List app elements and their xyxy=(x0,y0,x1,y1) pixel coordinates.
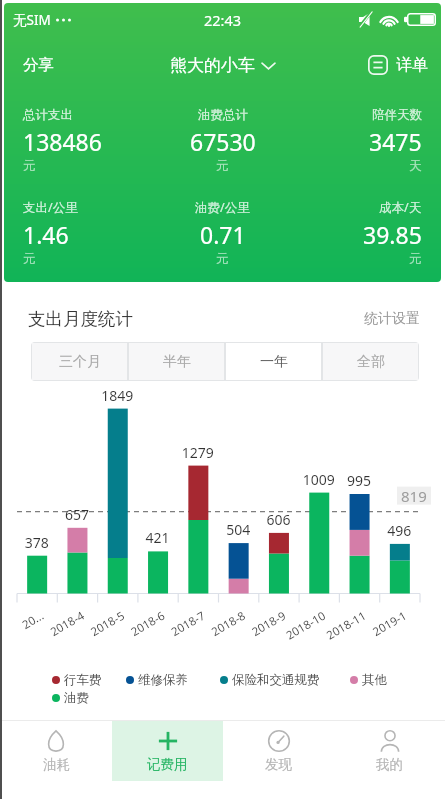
staticText: 元 xyxy=(23,158,36,174)
button[interactable]: 一年 xyxy=(226,343,321,380)
staticText: 行车费 xyxy=(64,672,102,688)
staticText: 油费总计 xyxy=(198,107,248,123)
staticText: 陪伴天数 xyxy=(372,107,422,123)
staticText: 熊大的小车 xyxy=(170,55,255,76)
staticText: 支出月度统计 xyxy=(28,308,133,330)
staticText: 成本/天 xyxy=(379,199,422,216)
staticText: 3475 xyxy=(369,126,422,157)
staticText: 无SIM xyxy=(13,11,51,29)
button[interactable]: 详单 xyxy=(358,49,441,81)
staticText: 1.46 xyxy=(23,219,69,250)
staticText: 维修保养 xyxy=(138,672,188,688)
staticText: 发现 xyxy=(265,756,292,773)
staticText: 其他 xyxy=(362,672,387,688)
staticText: 保险和交通规费 xyxy=(232,672,320,688)
staticText: 元 xyxy=(23,251,36,267)
button[interactable]: 统计设置 xyxy=(364,310,420,328)
button[interactable]: 油耗 xyxy=(0,721,112,781)
staticText: 支出/公里 xyxy=(23,199,78,216)
staticText: 全部 xyxy=(357,353,385,371)
button[interactable]: 分享 xyxy=(4,45,73,85)
staticText: 元 xyxy=(409,251,422,267)
button[interactable]: 熊大的小车 xyxy=(164,49,281,82)
staticText: 详单 xyxy=(396,55,428,75)
staticText: 67530 xyxy=(190,126,256,157)
staticText: 三个月 xyxy=(59,353,101,371)
staticText: 0.71 xyxy=(200,219,246,250)
staticText: 油费 xyxy=(64,690,89,706)
button[interactable]: 记费用 xyxy=(112,721,223,781)
staticText: 22:43 xyxy=(204,10,242,30)
button[interactable]: 三个月 xyxy=(32,343,127,380)
staticText: 油费/公里 xyxy=(195,199,250,216)
staticText: 我的 xyxy=(376,756,403,773)
staticText: 记费用 xyxy=(147,756,188,773)
staticText: 天 xyxy=(409,158,422,174)
staticText: 元 xyxy=(216,158,229,174)
staticText: 油耗 xyxy=(43,756,70,773)
staticText: 元 xyxy=(216,251,229,267)
button[interactable]: 我的 xyxy=(334,721,445,781)
button[interactable]: 半年 xyxy=(129,343,224,380)
button[interactable]: 全部 xyxy=(323,343,418,380)
staticText: 138486 xyxy=(23,126,102,157)
button[interactable]: 发现 xyxy=(223,721,334,781)
staticText: 一年 xyxy=(260,353,288,371)
staticText: 统计设置 xyxy=(364,310,420,328)
staticText: 半年 xyxy=(163,353,191,371)
staticText: 分享 xyxy=(23,55,54,75)
staticText: 39.85 xyxy=(363,219,422,250)
staticText: 总计支出 xyxy=(23,107,73,123)
